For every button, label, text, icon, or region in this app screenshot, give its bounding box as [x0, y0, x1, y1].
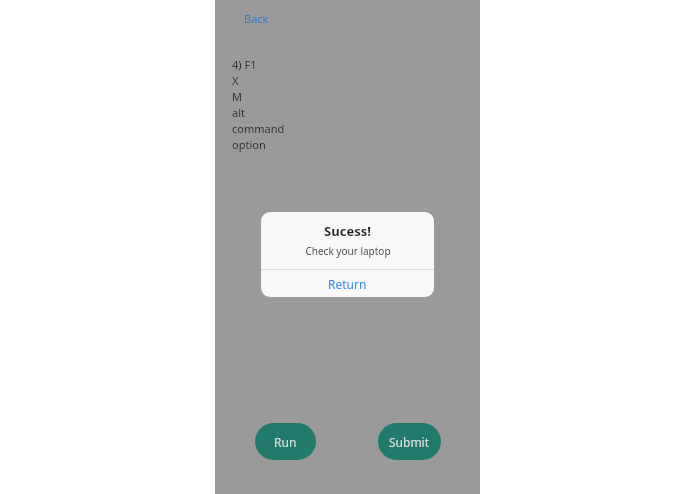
staticText: command [232, 121, 285, 136]
staticText: Sucess! [324, 222, 371, 240]
button[interactable]: Run [255, 423, 316, 460]
staticText: 4) F1 [232, 57, 257, 72]
staticText: option [232, 137, 266, 152]
staticText: Run [274, 434, 297, 450]
staticText: M [232, 89, 242, 104]
staticText: alt [232, 105, 245, 120]
staticText: X [232, 73, 239, 88]
button[interactable]: Submit [378, 423, 441, 460]
staticText: Check your laptop [305, 244, 391, 258]
staticText: Return [328, 276, 367, 292]
staticText: Back [244, 11, 269, 26]
staticText: Submit [389, 434, 430, 450]
button[interactable]: Return [261, 270, 434, 297]
button[interactable]: Back [240, 8, 273, 29]
